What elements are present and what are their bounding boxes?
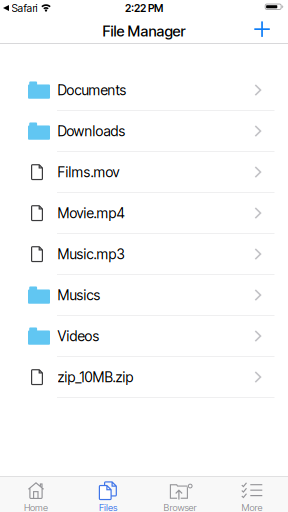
button[interactable]: Home xyxy=(0,481,72,512)
button[interactable]: Downloads xyxy=(0,111,288,151)
staticText: Files xyxy=(99,502,117,512)
staticText: Films.mov xyxy=(57,164,119,181)
button[interactable]: zip_10MB.zip xyxy=(0,357,288,397)
staticText: zip_10MB.zip xyxy=(57,369,133,386)
staticText: Downloads xyxy=(57,123,125,140)
button[interactable]: Movie.mp4 xyxy=(0,193,288,233)
button[interactable]: Documents xyxy=(0,70,288,110)
staticText: Documents xyxy=(57,82,126,99)
button[interactable]: Films.mov xyxy=(0,152,288,192)
button[interactable]: Music.mp3 xyxy=(0,234,288,274)
staticText: Browser xyxy=(163,502,196,512)
staticText: 2:22 PM xyxy=(125,1,163,14)
staticText: Movie.mp4 xyxy=(57,205,124,222)
staticText: File Manager xyxy=(102,22,185,40)
button[interactable]: Files xyxy=(72,481,144,512)
staticText: More xyxy=(241,502,262,512)
staticText: Safari xyxy=(11,1,37,14)
staticText: Home xyxy=(24,502,48,512)
button[interactable]: Musics xyxy=(0,275,288,315)
button[interactable]: Browser xyxy=(144,481,216,512)
staticText: Musics xyxy=(57,287,100,304)
button[interactable]: Videos xyxy=(0,316,288,356)
button[interactable]: More xyxy=(216,481,288,512)
staticText: Music.mp3 xyxy=(57,246,124,263)
button[interactable]: Add xyxy=(254,21,288,41)
button[interactable]: Back to Safari xyxy=(0,1,52,14)
staticText: Videos xyxy=(57,328,99,345)
